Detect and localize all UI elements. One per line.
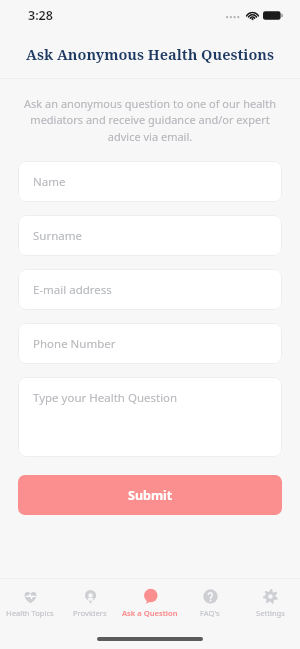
staticText: Submit xyxy=(128,487,173,504)
button[interactable]: FAQ's xyxy=(180,579,240,628)
staticText: Type your Health Question xyxy=(33,390,178,406)
staticText: Ask a Question xyxy=(122,608,178,618)
button[interactable]: Ask a Question xyxy=(120,579,180,628)
button[interactable]: Submit xyxy=(18,475,282,515)
staticText: Ask an anonymous question to one of our … xyxy=(24,96,276,145)
button[interactable]: Providers xyxy=(60,579,120,628)
staticText: Phone Number xyxy=(33,336,116,352)
staticText: Ask Anonymous Health Questions xyxy=(26,44,274,64)
button[interactable]: Phone Number xyxy=(18,323,282,364)
staticText: Name xyxy=(33,174,66,190)
button[interactable]: Surname xyxy=(18,215,282,256)
staticText: Settings xyxy=(256,608,285,618)
button[interactable]: Health Topics xyxy=(0,579,60,628)
button[interactable]: Settings xyxy=(240,579,300,628)
button[interactable]: Name xyxy=(18,161,282,202)
staticText: FAQ's xyxy=(200,608,220,618)
button[interactable]: E-mail address xyxy=(18,269,282,310)
staticText: Surname xyxy=(33,228,82,244)
staticText: 3:28 xyxy=(28,7,53,24)
staticText: Providers xyxy=(73,608,107,618)
staticText: Health Topics xyxy=(6,608,54,618)
button[interactable]: Type your Health Question xyxy=(18,377,282,457)
staticText: E-mail address xyxy=(33,282,112,298)
